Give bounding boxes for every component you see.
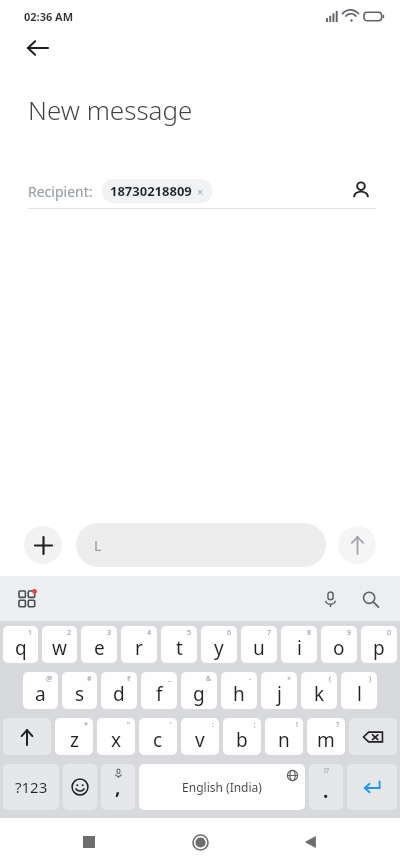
staticText: m [317, 727, 335, 753]
staticText: h [233, 681, 245, 707]
button[interactable]: ? [307, 718, 345, 755]
staticText: s [75, 681, 85, 707]
button[interactable]: Shift [3, 718, 51, 755]
button[interactable]: @ [23, 672, 58, 709]
staticText: x [111, 727, 122, 753]
staticText: q [15, 635, 27, 661]
button[interactable]: Attach [24, 526, 62, 564]
staticText: v [195, 727, 205, 753]
staticText: _ [168, 674, 172, 684]
button[interactable]: , [101, 764, 135, 810]
staticText: 3 [107, 628, 112, 638]
staticText: 2 [67, 628, 72, 638]
button[interactable]: # [62, 672, 97, 709]
button[interactable]: ?123 [3, 764, 59, 810]
button[interactable]: Contacts [346, 176, 376, 206]
staticText: : [212, 720, 214, 730]
button[interactable]: " [97, 718, 135, 755]
staticText: o [333, 635, 345, 661]
button[interactable]: Home [178, 820, 222, 864]
button[interactable]: 9 [321, 626, 357, 663]
staticText: t [176, 635, 183, 661]
staticText: ₹ [127, 674, 132, 684]
button[interactable]: ! [265, 718, 303, 755]
button[interactable]: ; [223, 718, 261, 755]
button[interactable]: ( [301, 672, 337, 709]
button[interactable]: Emoji [63, 764, 97, 810]
staticText: , [115, 774, 121, 800]
staticText: f [156, 681, 163, 707]
staticText: j [277, 681, 282, 707]
button[interactable]: 3 [81, 626, 117, 663]
staticText: ? [336, 720, 340, 730]
button[interactable]: + [261, 672, 297, 709]
staticText: 0 [387, 628, 392, 638]
staticText: 5 [187, 628, 192, 638]
staticText: c [153, 727, 163, 753]
button[interactable]: Back [289, 820, 333, 864]
staticText: y [214, 635, 224, 661]
staticText: . [323, 778, 329, 804]
staticText: & [206, 674, 212, 684]
staticText: a [35, 681, 46, 707]
button[interactable]: L [76, 523, 326, 567]
button[interactable]: Voice input [316, 585, 344, 613]
staticText: @ [46, 674, 53, 684]
button[interactable]: Send [338, 526, 376, 564]
staticText: + [287, 674, 292, 684]
staticText: 6 [227, 628, 232, 638]
button[interactable]: Backspace [349, 718, 397, 755]
button[interactable]: !? [309, 764, 343, 810]
staticText: ?123 [15, 777, 48, 797]
staticText: i [297, 635, 302, 661]
staticText: L [94, 536, 102, 555]
button[interactable]: 6 [201, 626, 237, 663]
staticText: 18730218809 [110, 182, 192, 200]
staticText: 02:36 AM [24, 9, 74, 24]
staticText: p [373, 635, 385, 661]
staticText: ! [296, 720, 298, 730]
staticText: - [249, 674, 252, 684]
staticText: New message [28, 92, 193, 127]
button[interactable]: Enter [347, 764, 397, 810]
button[interactable]: - [221, 672, 257, 709]
button[interactable]: Toolbar [14, 586, 40, 612]
staticText: u [253, 635, 265, 661]
staticText: !? [324, 766, 329, 776]
button[interactable]: Back [26, 32, 400, 64]
button[interactable]: 8 [281, 626, 317, 663]
staticText: g [193, 681, 205, 707]
staticText: e [94, 635, 105, 661]
staticText: l [357, 681, 362, 707]
button[interactable]: 7 [241, 626, 277, 663]
button[interactable]: 1 [3, 626, 38, 663]
button[interactable]: ) [341, 672, 377, 709]
staticText: 9 [347, 628, 352, 638]
button[interactable]: : [181, 718, 219, 755]
button[interactable]: _ [141, 672, 177, 709]
staticText: w [52, 635, 67, 661]
staticText: d [113, 681, 125, 707]
button[interactable]: Search [356, 585, 384, 613]
staticText: English (India) [182, 779, 262, 795]
staticText: 4 [147, 628, 152, 638]
staticText: r [135, 635, 143, 661]
button[interactable]: 5 [161, 626, 197, 663]
button[interactable]: & [181, 672, 217, 709]
button[interactable]: ' [139, 718, 177, 755]
staticText: * [84, 720, 88, 730]
button[interactable]: ₹ [101, 672, 137, 709]
button[interactable]: 18730218809 [102, 179, 212, 203]
staticText: n [278, 727, 290, 753]
button[interactable]: 2 [42, 626, 77, 663]
staticText: 8 [307, 628, 312, 638]
button[interactable]: Recents [67, 820, 111, 864]
button[interactable]: * [55, 718, 93, 755]
staticText: z [70, 727, 79, 753]
staticText: × [197, 184, 204, 199]
staticText: ; [254, 720, 256, 730]
button[interactable]: 0 [361, 626, 397, 663]
staticText: k [314, 681, 325, 707]
button[interactable]: English (India) [139, 764, 305, 810]
button[interactable]: 4 [121, 626, 157, 663]
